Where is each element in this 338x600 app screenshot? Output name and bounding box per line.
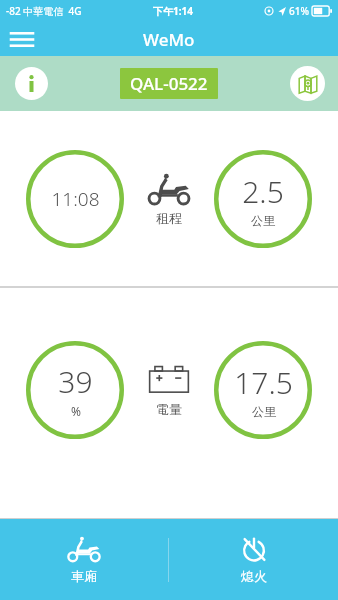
button[interactable]: 39: [26, 341, 124, 439]
staticText: %: [71, 403, 81, 419]
button[interactable]: QAL-0522: [120, 68, 218, 99]
button[interactable]: Menu: [0, 22, 44, 56]
button[interactable]: Information: [15, 67, 48, 100]
staticText: 公里: [252, 404, 276, 419]
button[interactable]: Map: [290, 66, 325, 101]
staticText: 車廂: [71, 568, 97, 584]
staticText: 2.5: [242, 171, 284, 212]
button[interactable]: 熄火: [169, 519, 338, 600]
staticText: 公里: [251, 213, 275, 228]
button[interactable]: 11:08: [26, 150, 124, 248]
staticText: 電量: [156, 401, 182, 417]
staticText: 租程: [156, 210, 182, 226]
staticText: 39: [58, 361, 93, 402]
staticText: 11:08: [51, 186, 100, 212]
button[interactable]: 車廂: [0, 519, 168, 600]
button[interactable]: 17.5: [214, 341, 312, 439]
staticText: QAL-0522: [130, 72, 208, 95]
staticText: 17.5: [234, 362, 293, 403]
button[interactable]: 2.5: [214, 150, 312, 248]
staticText: 熄火: [241, 568, 267, 584]
staticText: -82 中華電信 4G: [6, 4, 82, 18]
staticText: 61%: [289, 4, 309, 18]
staticText: WeMo: [143, 28, 195, 51]
staticText: 下午1:14: [153, 4, 193, 18]
